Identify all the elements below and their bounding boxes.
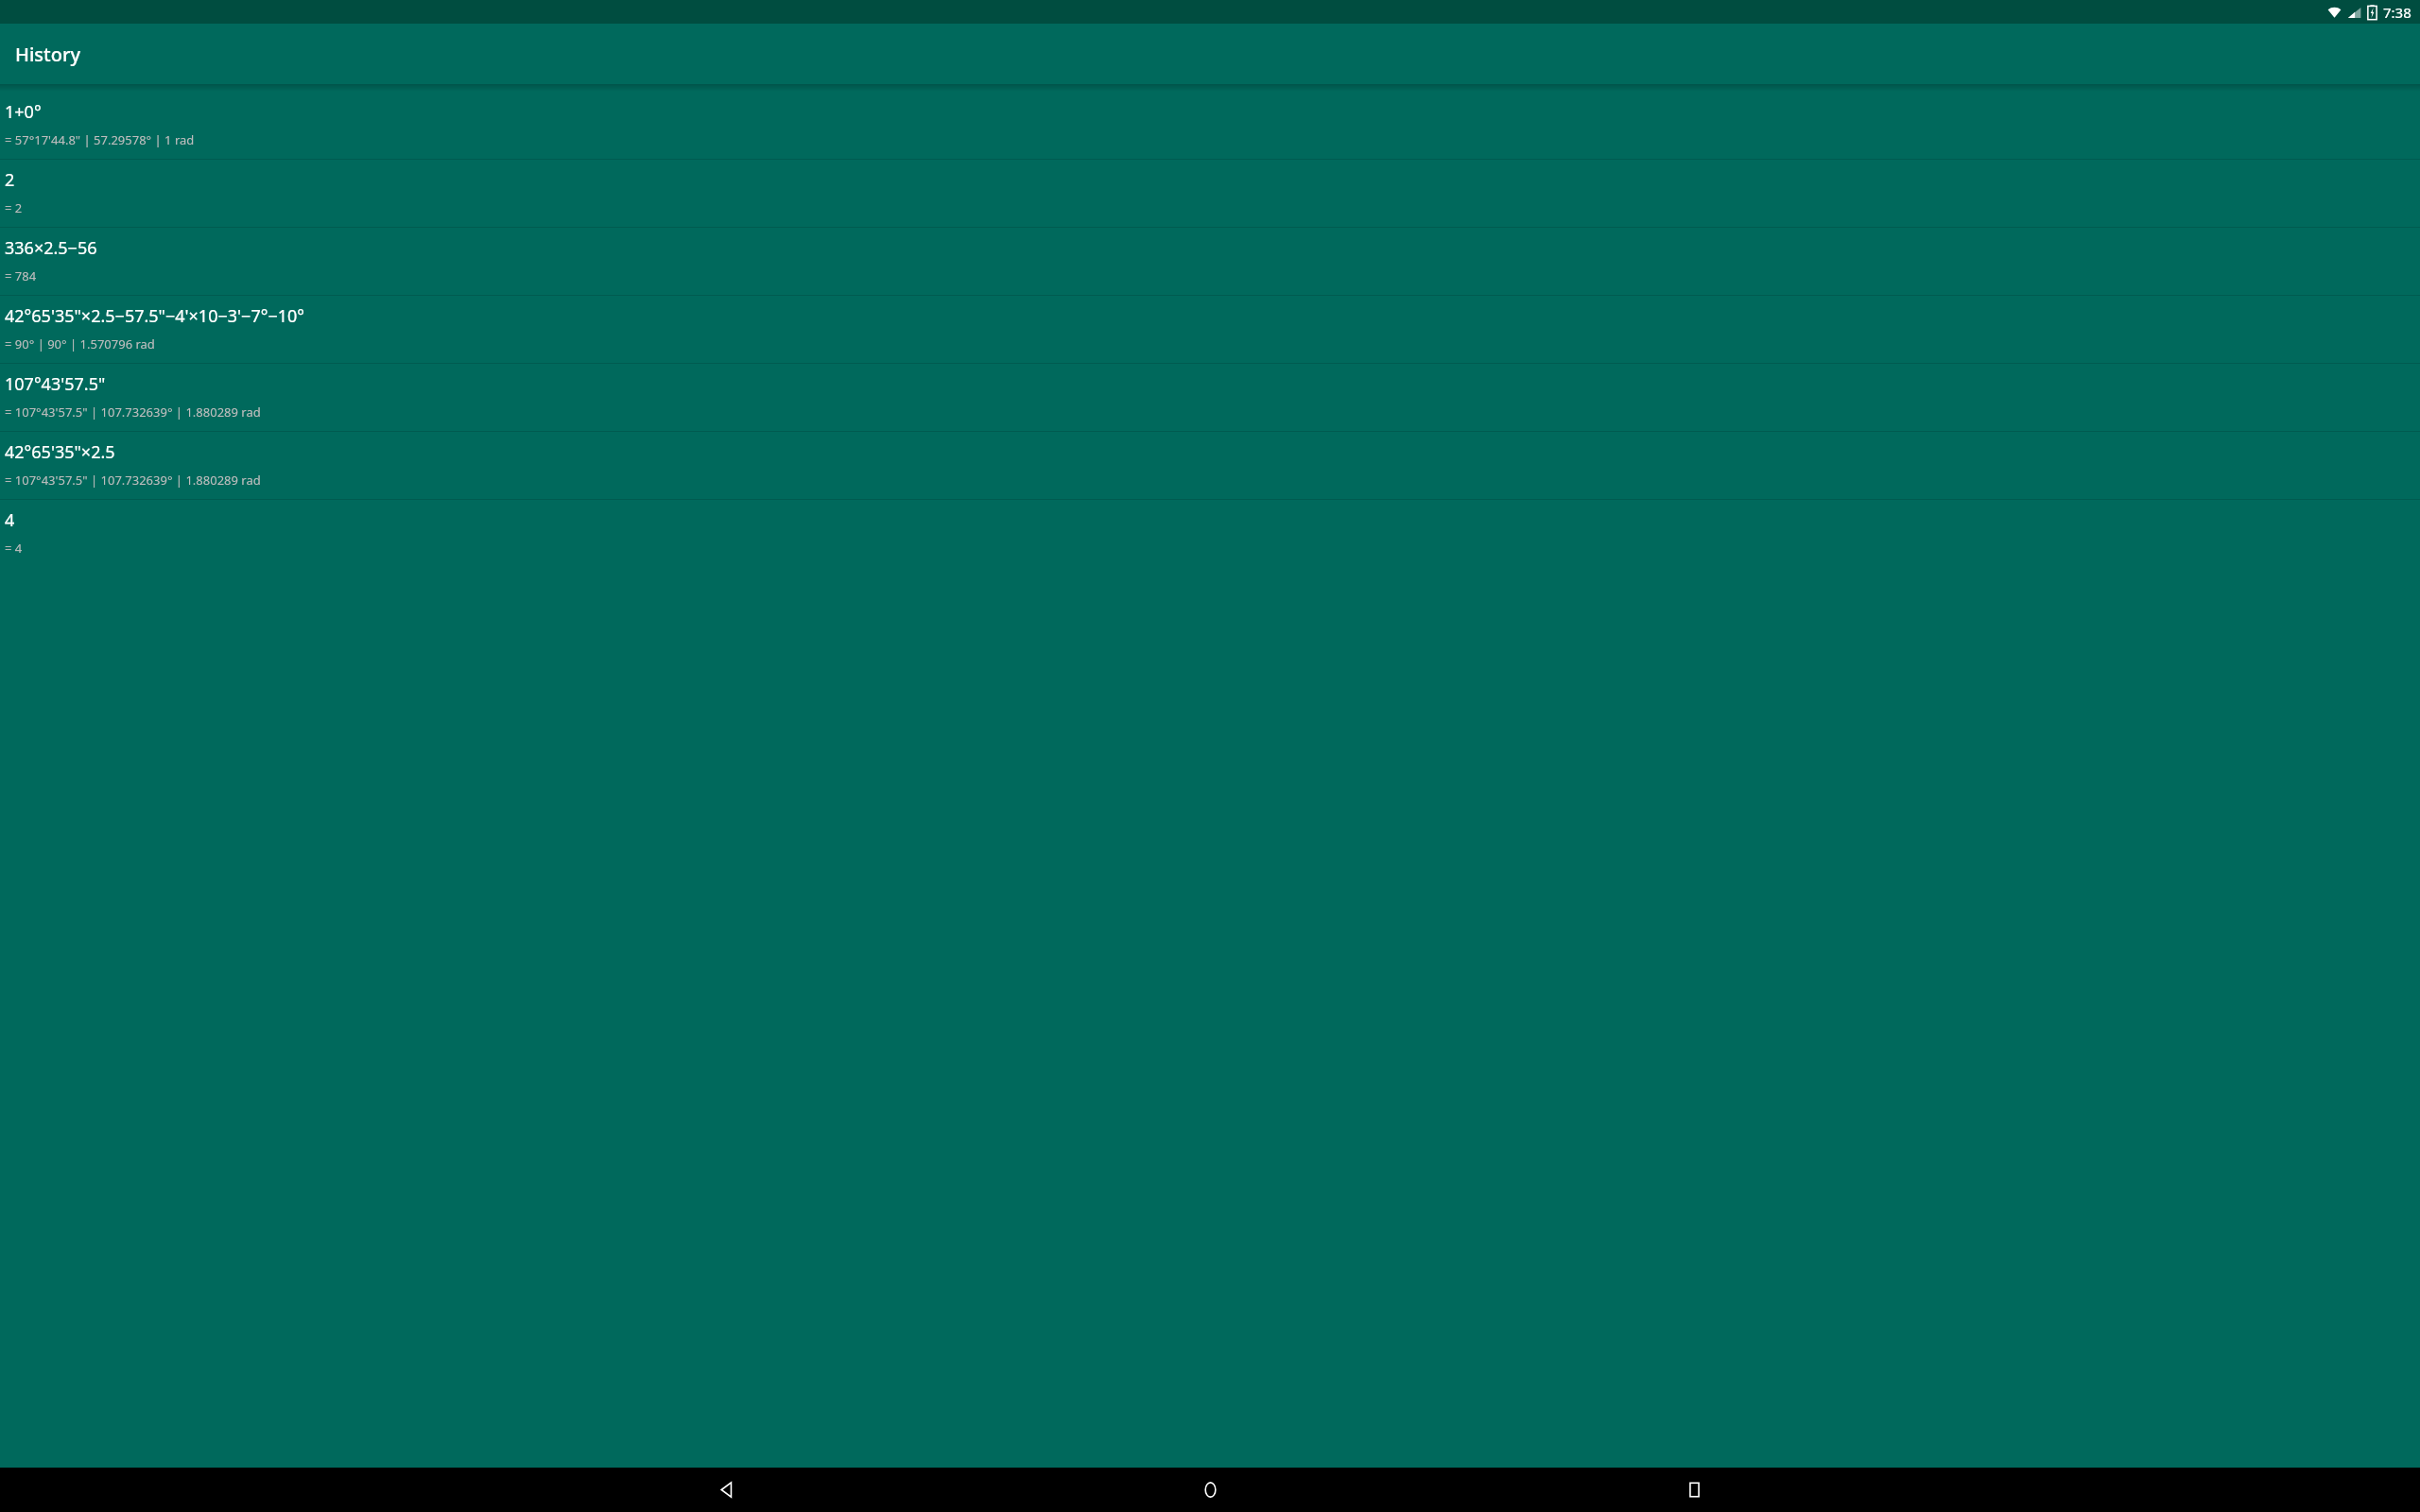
button[interactable]: Recent apps <box>1452 1468 1936 1512</box>
staticText: 42°65'35"×2.5−57.5"−4'×10−3'−7°−10° <box>5 304 304 328</box>
staticText: = 784 <box>5 267 37 284</box>
staticText: 107°43'57.5" <box>5 372 106 396</box>
button[interactable]: 336×2.5−56 <box>0 228 2420 295</box>
staticText: 7:38 <box>2383 3 2411 22</box>
staticText: = 107°43'57.5" | 107.732639° | 1.880289 … <box>5 404 261 421</box>
button[interactable]: 2 <box>0 160 2420 227</box>
staticText: = 90° | 90° | 1.570796 rad <box>5 335 155 352</box>
staticText: 42°65'35"×2.5 <box>5 440 115 464</box>
button[interactable]: Home <box>968 1468 1452 1512</box>
button[interactable]: 1+0° <box>0 92 2420 159</box>
staticText: History <box>15 42 80 67</box>
staticText: = 57°17'44.8" | 57.29578° | 1 rad <box>5 131 195 148</box>
button[interactable]: Back <box>484 1468 968 1512</box>
staticText: 2 <box>5 168 15 192</box>
staticText: = 2 <box>5 199 23 216</box>
button[interactable]: 4 <box>0 500 2420 567</box>
staticText: 336×2.5−56 <box>5 236 97 260</box>
staticText: = 107°43'57.5" | 107.732639° | 1.880289 … <box>5 472 261 489</box>
button[interactable]: 107°43'57.5" <box>0 364 2420 431</box>
staticText: = 4 <box>5 540 23 557</box>
button[interactable]: 42°65'35"×2.5 <box>0 432 2420 499</box>
staticText: 4 <box>5 508 15 532</box>
button[interactable]: 42°65'35"×2.5−57.5"−4'×10−3'−7°−10° <box>0 296 2420 363</box>
staticText: 1+0° <box>5 100 42 124</box>
